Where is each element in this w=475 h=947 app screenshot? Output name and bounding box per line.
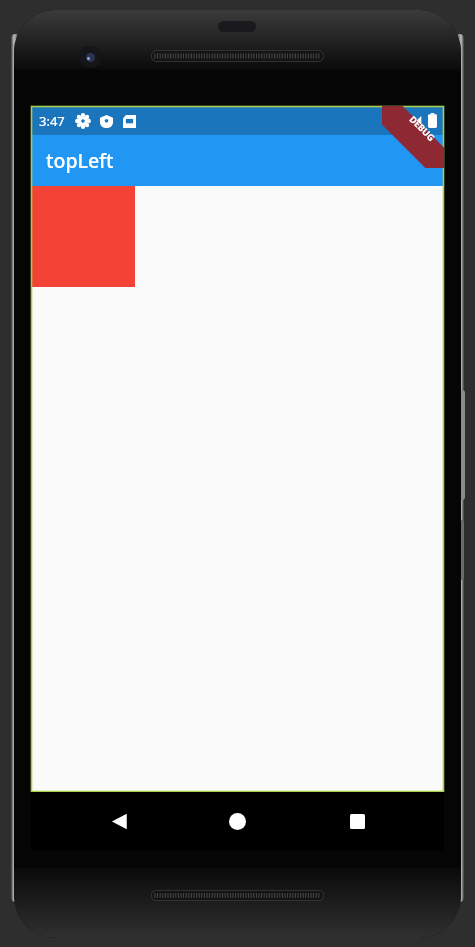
button[interactable]: Home — [211, 795, 263, 847]
button[interactable]: Recent apps — [331, 795, 383, 847]
staticText: DEBUG — [407, 113, 438, 143]
button[interactable]: Back — [93, 795, 145, 847]
staticText: 3:47 — [39, 112, 65, 130]
staticText: topLeft — [46, 147, 114, 174]
